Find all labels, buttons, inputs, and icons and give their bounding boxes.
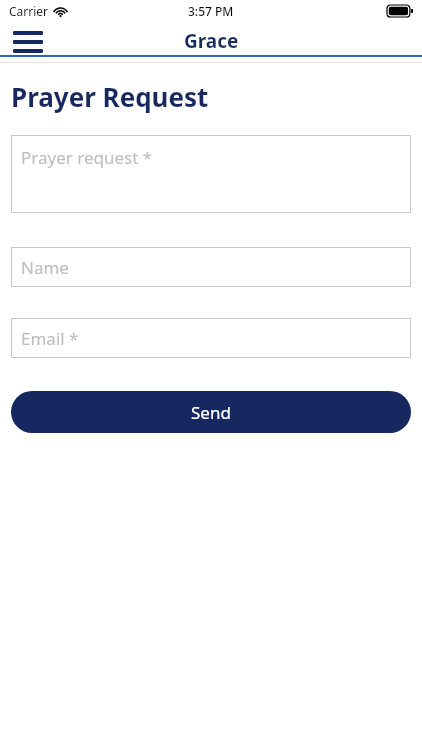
button[interactable]: Prayer request * — [11, 135, 411, 213]
button[interactable]: Grace — [0, 22, 422, 62]
staticText: Name — [21, 256, 69, 279]
staticText: Grace — [184, 28, 239, 54]
staticText: Prayer Request — [11, 79, 209, 114]
button[interactable]: Email * — [11, 318, 411, 358]
button[interactable]: Menu — [8, 26, 48, 58]
button[interactable]: Name — [11, 247, 411, 287]
staticText: Prayer request * — [21, 146, 153, 169]
staticText: Email * — [21, 327, 79, 350]
button[interactable]: Send — [11, 391, 411, 433]
staticText: Carrier — [9, 3, 49, 19]
staticText: Send — [191, 401, 231, 424]
staticText: 3:57 PM — [188, 3, 234, 19]
